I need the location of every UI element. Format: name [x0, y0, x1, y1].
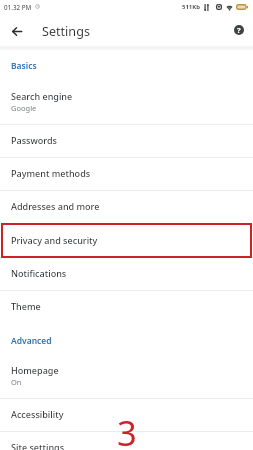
button[interactable]: Privacy and security — [0, 224, 253, 257]
staticText: 511Kb — [182, 3, 201, 11]
button[interactable]: Homepage — [0, 365, 253, 398]
staticText: Privacy and security — [11, 234, 98, 246]
staticText: Theme — [11, 300, 41, 312]
button[interactable]: Payment methods — [0, 157, 253, 190]
button[interactable]: Search engine — [0, 91, 253, 124]
staticText: Site settings — [11, 441, 65, 450]
button[interactable]: Notifications — [0, 257, 253, 290]
staticText: 3 — [117, 409, 137, 450]
staticText: Payment methods — [11, 167, 91, 179]
staticText: Settings — [42, 23, 90, 40]
button[interactable]: Addresses and more — [0, 190, 253, 223]
button[interactable]: Help — [228, 19, 250, 41]
staticText: Accessibility — [11, 408, 64, 420]
staticText: Notifications — [11, 267, 67, 279]
staticText: Search engine — [11, 90, 73, 102]
staticText: ? — [237, 25, 241, 35]
staticText: On — [11, 377, 22, 387]
staticText: Addresses and more — [11, 200, 100, 212]
staticText: Passwords — [11, 134, 57, 146]
staticText: 01.32 PM — [4, 3, 32, 12]
button[interactable]: Site settings — [0, 431, 253, 450]
button[interactable]: Passwords — [0, 124, 253, 157]
button[interactable]: Back — [5, 19, 29, 43]
staticText: Google — [11, 103, 37, 113]
staticText: Homepage — [11, 364, 59, 376]
staticText: Basics — [11, 60, 37, 72]
staticText: Advanced — [11, 335, 52, 347]
button[interactable]: Theme — [0, 290, 253, 323]
button[interactable]: Accessibility — [0, 398, 253, 431]
